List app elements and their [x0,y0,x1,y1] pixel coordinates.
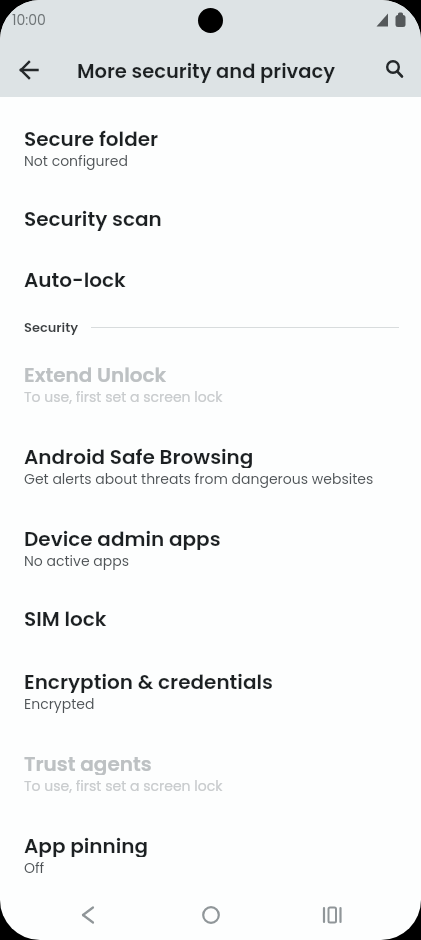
button[interactable] [52,896,124,940]
button[interactable]: SIM lock [0,589,421,650]
staticText: Get alerts about threats from dangerous … [24,469,374,489]
staticText: Device admin apps [24,525,221,550]
staticText: App pinning [24,832,149,857]
staticText: Encryption & credentials [24,668,273,693]
staticText: Extend Unlock [24,361,167,386]
staticText: Security [24,318,79,336]
button[interactable] [4,46,52,94]
staticText: 10:00 [12,10,46,30]
button[interactable] [298,896,370,940]
staticText: Off [24,858,45,878]
button[interactable]: App pinning [0,814,421,896]
button[interactable]: Encryption & credentials [0,650,421,732]
staticText: More security and privacy [77,58,336,85]
button[interactable]: Security scan [0,189,421,250]
button[interactable]: Device admin apps [0,507,421,589]
button[interactable]: Trust agents [0,732,421,814]
staticText: No active apps [24,551,130,571]
staticText: Secure folder [24,125,159,150]
staticText: Trust agents [24,750,152,775]
staticText: Security scan [24,205,162,233]
button[interactable]: Android Safe Browsing [0,425,421,507]
button[interactable] [369,46,417,94]
staticText: Encrypted [24,694,95,714]
staticText: Auto-lock [24,266,126,294]
staticText: SIM lock [24,605,107,633]
button[interactable] [175,896,247,940]
button[interactable]: Auto-lock [0,250,421,311]
staticText: Android Safe Browsing [24,443,254,468]
staticText: Not configured [24,151,128,171]
button[interactable]: Secure folder [0,107,421,189]
staticText: To use, first set a screen lock [24,387,223,407]
button[interactable]: Extend Unlock [0,343,421,425]
staticText: To use, first set a screen lock [24,776,223,796]
